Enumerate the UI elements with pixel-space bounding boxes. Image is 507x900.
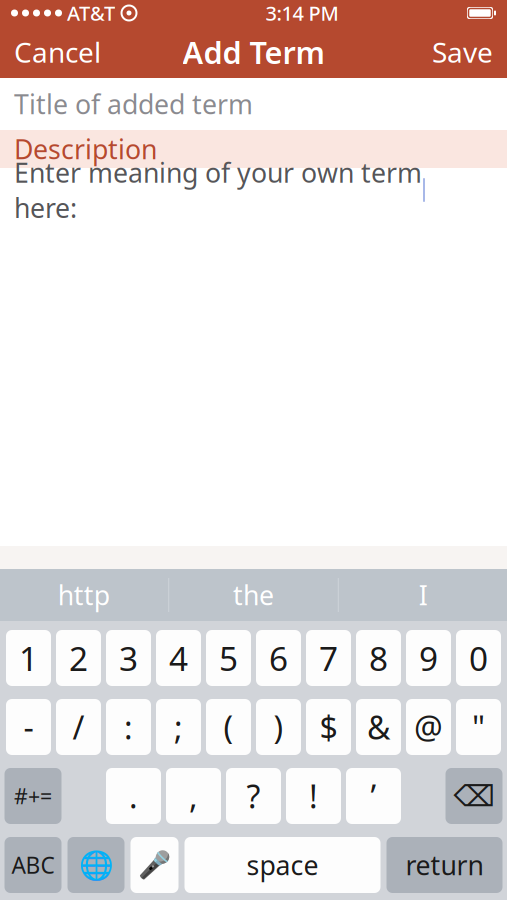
button[interactable]: , [166, 768, 221, 824]
staticText: . [129, 775, 138, 817]
button[interactable]: : [106, 699, 151, 755]
button[interactable]: 0 [456, 630, 501, 686]
staticText: 1 [19, 636, 38, 680]
button[interactable]: Next keyboard [67, 837, 124, 893]
staticText: ) [273, 706, 283, 748]
button[interactable]: ! [286, 768, 341, 824]
staticText: 🌐 [78, 849, 113, 881]
button[interactable]: 2 [56, 630, 101, 686]
button[interactable]: Save [418, 26, 507, 78]
button[interactable]: #+= [4, 768, 61, 824]
staticText: ’ [370, 775, 376, 817]
button[interactable]: 8 [356, 630, 401, 686]
staticText: 5 [219, 636, 238, 680]
button[interactable]: Dictation [130, 837, 178, 893]
button[interactable]: return [386, 837, 502, 893]
button[interactable]: & [356, 699, 401, 755]
button[interactable]: Cancel [0, 26, 115, 78]
staticText: http [58, 577, 110, 613]
staticText: Enter meaning of your own term here: [14, 155, 422, 225]
staticText: 8 [369, 636, 388, 680]
staticText: ? [246, 775, 260, 817]
staticText: I [419, 577, 428, 613]
staticText: 9 [419, 636, 438, 680]
staticText: Save [432, 33, 493, 71]
button[interactable]: Delete [445, 768, 502, 824]
staticText: 6 [269, 636, 288, 680]
button[interactable]: @ [406, 699, 451, 755]
staticText: #+= [14, 782, 52, 810]
staticText: Description [14, 131, 157, 167]
button[interactable]: ABC [4, 837, 61, 893]
button[interactable]: space [184, 837, 380, 893]
staticText: 4 [169, 636, 188, 680]
button[interactable]: 5 [206, 630, 251, 686]
button[interactable]: 7 [306, 630, 351, 686]
staticText: ABC [11, 850, 54, 880]
staticText: 7 [319, 636, 338, 680]
staticText: : [124, 706, 133, 748]
staticText: 2 [69, 636, 88, 680]
button[interactable]: 1 [6, 630, 51, 686]
button[interactable]: 3 [106, 630, 151, 686]
button[interactable]: I [339, 569, 507, 621]
staticText: return [405, 847, 483, 883]
staticText: the [233, 577, 274, 613]
staticText: , [189, 775, 198, 817]
staticText: " [472, 706, 485, 748]
button[interactable]: Enter meaning of your own term here: [0, 168, 507, 212]
staticText: ! [309, 775, 318, 817]
staticText: Cancel [14, 33, 101, 71]
staticText: $ [319, 706, 337, 748]
button[interactable]: the [169, 569, 338, 621]
staticText: 3:14 PM [265, 0, 338, 26]
button[interactable]: ; [156, 699, 201, 755]
button[interactable]: 9 [406, 630, 451, 686]
button[interactable]: " [456, 699, 501, 755]
staticText: Add Term [182, 32, 324, 72]
staticText: @ [414, 706, 443, 748]
button[interactable]: . [106, 768, 161, 824]
button[interactable]: / [56, 699, 101, 755]
button[interactable]: ? [226, 768, 281, 824]
staticText: 0 [469, 636, 488, 680]
staticText: 🎤 [138, 850, 171, 880]
button[interactable]: Title of added term [0, 78, 507, 130]
staticText: space [246, 847, 318, 883]
staticText: - [23, 706, 33, 748]
staticText: / [72, 706, 84, 748]
staticText: ( [223, 706, 233, 748]
button[interactable]: http [0, 569, 168, 621]
staticText: 3 [119, 636, 138, 680]
staticText: AT&T [62, 0, 115, 26]
button[interactable]: ( [206, 699, 251, 755]
staticText: ⌫ [453, 779, 494, 813]
button[interactable]: 6 [256, 630, 301, 686]
button[interactable]: $ [306, 699, 351, 755]
staticText: & [367, 706, 390, 748]
button[interactable]: ) [256, 699, 301, 755]
button[interactable]: 4 [156, 630, 201, 686]
staticText: Title of added term [14, 86, 253, 122]
button[interactable]: ’ [346, 768, 401, 824]
button[interactable]: - [6, 699, 51, 755]
staticText: ; [174, 706, 183, 748]
